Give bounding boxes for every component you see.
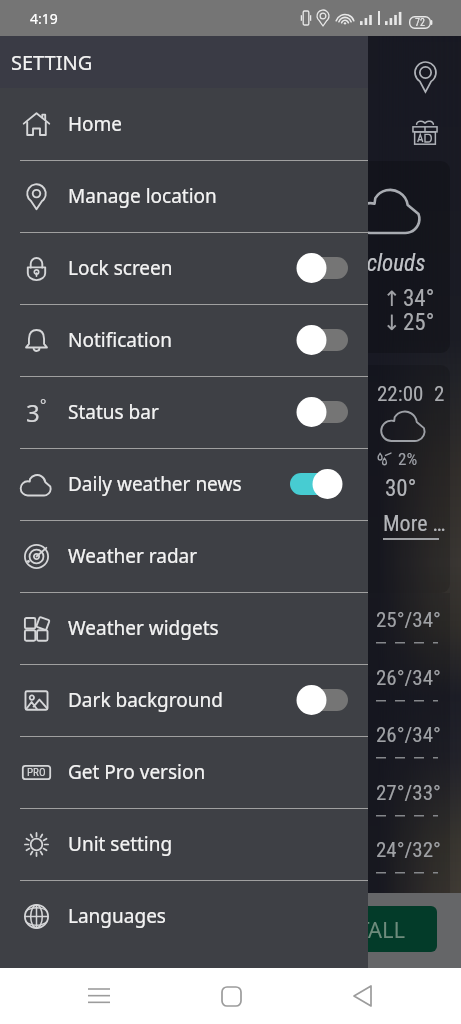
staticText: 4:19 [30, 9, 58, 28]
staticText: 22:00 [377, 382, 424, 407]
button[interactable]: On [290, 469, 348, 499]
staticText: Languages [68, 903, 166, 929]
staticText: Home [68, 111, 123, 137]
staticText: Notification [68, 327, 172, 353]
button[interactable]: Back [330, 968, 394, 1024]
staticText: Dark background [68, 687, 223, 713]
staticText: ↓ [383, 311, 401, 335]
staticText: Get Pro version [68, 759, 206, 785]
staticText: Daily weather news [68, 471, 242, 497]
staticText: 27°/33° [376, 781, 441, 806]
staticText: INSTALL [321, 914, 406, 944]
button[interactable]: Daily weather news [0, 448, 368, 520]
staticText: Few clouds [326, 250, 426, 277]
staticText: 25°/34° [376, 608, 441, 633]
button[interactable]: Off [290, 397, 348, 427]
button[interactable]: Manage location [0, 160, 368, 232]
button[interactable]: Languages [0, 880, 368, 952]
staticText: 26°/34° [376, 723, 441, 748]
button[interactable]: Home [199, 968, 263, 1024]
staticText: ° [40, 394, 47, 414]
button[interactable]: 3 [0, 376, 368, 448]
button[interactable]: Lock screen [0, 232, 368, 304]
button[interactable]: Dark background [0, 664, 368, 736]
staticText: 26°/34° [376, 666, 441, 691]
staticText: 25° [403, 309, 435, 336]
button[interactable]: Weather widgets [0, 592, 368, 664]
button[interactable]: Locations [398, 50, 452, 104]
button[interactable]: PRO [0, 736, 368, 808]
staticText: 2 [434, 382, 445, 407]
staticText: 2% [398, 449, 418, 469]
staticText: PRO [27, 766, 46, 779]
staticText: Unit setting [68, 831, 173, 857]
staticText: Weather radar [68, 543, 198, 569]
staticText: 72 [415, 17, 425, 29]
staticText: Status bar [68, 399, 159, 425]
staticText: Lock screen [68, 255, 173, 281]
staticText: 24°/32° [376, 838, 441, 863]
staticText: SETTING [11, 49, 93, 76]
button[interactable]: Notification [0, 304, 368, 376]
button[interactable]: INSTALL [290, 906, 437, 952]
staticText: 34° [403, 285, 435, 312]
staticText: 30° [385, 475, 417, 502]
button[interactable]: Advertisement [398, 106, 452, 160]
staticText: More … [383, 511, 446, 537]
button[interactable]: Off [290, 325, 348, 355]
staticText: Weather widgets [68, 615, 219, 641]
button[interactable]: Off [290, 253, 348, 283]
button[interactable]: Home [0, 88, 368, 160]
button[interactable]: Weather radar [0, 520, 368, 592]
button[interactable]: Unit setting [0, 808, 368, 880]
staticText: Manage location [68, 183, 217, 209]
staticText: ↑ [383, 287, 401, 311]
button[interactable]: Off [290, 685, 348, 715]
staticText: 3 [26, 396, 40, 428]
button[interactable]: Recent apps [67, 968, 131, 1024]
